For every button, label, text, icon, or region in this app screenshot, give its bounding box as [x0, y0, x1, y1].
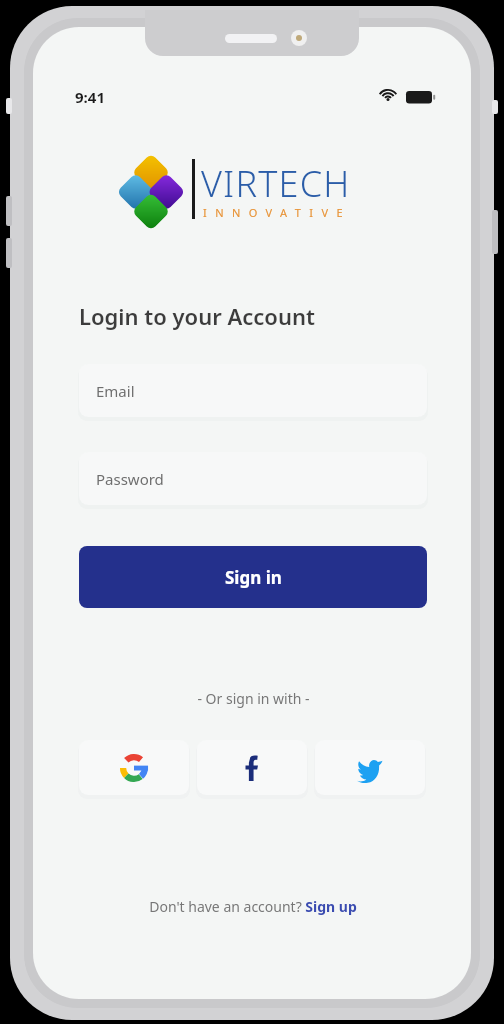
staticText: Sign in [225, 566, 282, 589]
button[interactable]: Sign in with Twitter [315, 740, 425, 795]
button[interactable]: Email [79, 364, 427, 417]
button[interactable]: Sign in with Google [79, 740, 189, 795]
staticText: - Or sign in with - [197, 689, 310, 708]
button[interactable]: Password [79, 452, 427, 505]
staticText: Don't have an account? Sign up [149, 897, 357, 916]
button[interactable]: Sign in with Facebook [197, 740, 307, 795]
button[interactable]: Sign in [79, 546, 427, 608]
staticText: Password [96, 469, 164, 489]
staticText: Email [96, 381, 135, 401]
staticText: INNOVATIVE [203, 205, 351, 220]
staticText: VIRTECH [201, 159, 351, 208]
staticText: Login to your Account [79, 301, 315, 331]
staticText: 9:41 [75, 87, 105, 107]
button[interactable]: Don't have an account? Sign up [79, 897, 427, 916]
